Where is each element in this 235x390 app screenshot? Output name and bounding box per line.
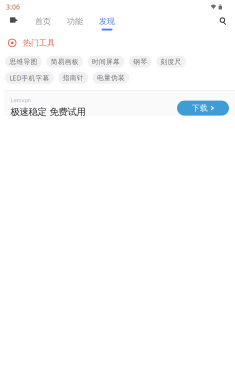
staticText: 刻度尺 xyxy=(161,58,182,66)
staticText: 极速稳定 免费试用 xyxy=(10,106,85,118)
staticText: 热门工具 xyxy=(23,38,55,48)
button[interactable]: Menu xyxy=(1,14,27,32)
staticText: 下载 xyxy=(192,103,208,113)
staticText: LED手机字幕 xyxy=(9,73,49,82)
staticText: 电量伪装 xyxy=(97,74,125,82)
staticText: 指南针 xyxy=(63,74,84,82)
staticText: 时间屏幕 xyxy=(92,58,120,66)
staticText: 3:06 xyxy=(6,3,20,11)
button[interactable]: 思维导图 xyxy=(5,56,42,68)
staticText: 简易画板 xyxy=(51,58,79,66)
staticText: 发现 xyxy=(99,16,115,26)
button[interactable]: 钢琴 xyxy=(129,56,152,68)
button[interactable]: Letsvpn xyxy=(4,90,235,116)
button[interactable]: 简易画板 xyxy=(46,56,83,68)
staticText: 思维导图 xyxy=(9,58,37,66)
staticText: 钢琴 xyxy=(133,58,147,66)
button[interactable]: 时间屏幕 xyxy=(88,56,124,68)
button[interactable]: Search xyxy=(212,14,234,32)
button[interactable]: 功能 xyxy=(59,14,91,32)
button[interactable]: 发现 xyxy=(91,14,123,32)
staticText: 首页 xyxy=(35,16,51,26)
staticText: 功能 xyxy=(67,16,83,26)
button[interactable]: 电量伪装 xyxy=(93,72,129,84)
button[interactable]: 首页 xyxy=(27,14,59,32)
staticText: Letsvpn xyxy=(10,97,30,104)
button[interactable]: 刻度尺 xyxy=(156,56,186,68)
button[interactable]: 指南针 xyxy=(58,72,88,84)
button[interactable]: LED手机字幕 xyxy=(5,72,54,84)
